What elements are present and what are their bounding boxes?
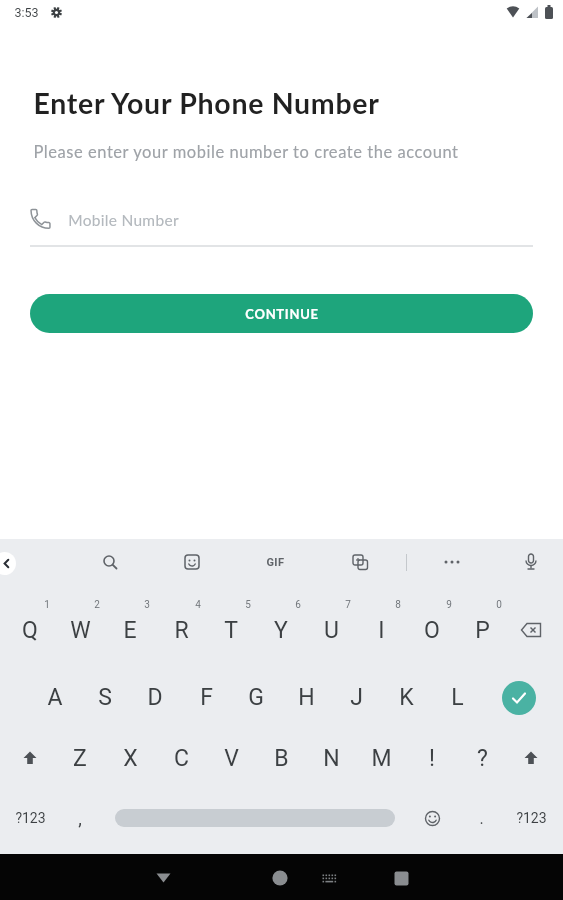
staticText: N xyxy=(323,745,340,772)
button[interactable]: ?123 xyxy=(507,796,555,840)
button[interactable] xyxy=(88,539,132,585)
button[interactable]: B xyxy=(257,736,305,780)
button[interactable] xyxy=(258,856,302,900)
button[interactable]: CONTINUE xyxy=(30,294,533,333)
button[interactable] xyxy=(170,539,214,585)
button[interactable] xyxy=(141,856,185,900)
staticText: 3:53 xyxy=(14,5,39,20)
button[interactable]: ! xyxy=(408,736,456,780)
staticText: CONTINUE xyxy=(245,306,319,322)
button[interactable]: D xyxy=(131,675,179,719)
staticText: F xyxy=(200,684,213,711)
button[interactable] xyxy=(507,608,555,652)
staticText: O xyxy=(424,617,440,644)
button[interactable]: P xyxy=(458,608,506,652)
staticText: D xyxy=(147,684,163,711)
button[interactable] xyxy=(502,681,536,715)
staticText: B xyxy=(274,745,289,772)
staticText: T xyxy=(224,617,238,644)
button[interactable]: T xyxy=(207,608,255,652)
staticText: K xyxy=(399,684,414,711)
staticText: Q xyxy=(22,617,38,644)
button[interactable]: E xyxy=(106,608,154,652)
staticText: C xyxy=(174,745,189,772)
button[interactable] xyxy=(338,539,382,585)
button[interactable]: . xyxy=(457,796,505,840)
button[interactable] xyxy=(509,539,553,585)
staticText: ?123 xyxy=(15,810,46,826)
staticText: M xyxy=(371,745,392,772)
staticText: P xyxy=(475,617,490,644)
staticText: J xyxy=(350,684,363,711)
staticText: I xyxy=(378,617,385,644)
staticText: A xyxy=(47,684,63,711)
button[interactable]: S xyxy=(81,675,129,719)
staticText: 1 xyxy=(44,599,50,611)
staticText: V xyxy=(224,745,239,772)
staticText: ?123 xyxy=(516,810,547,826)
button[interactable] xyxy=(412,798,452,838)
staticText: ! xyxy=(429,745,435,772)
staticText: , xyxy=(78,808,82,829)
button[interactable]: A xyxy=(31,675,79,719)
button[interactable] xyxy=(430,539,474,585)
button[interactable]: R xyxy=(157,608,205,652)
staticText: G xyxy=(248,684,264,711)
button[interactable]: ? xyxy=(458,736,506,780)
staticText: W xyxy=(70,617,91,644)
staticText: . xyxy=(479,809,484,828)
staticText: R xyxy=(174,617,189,644)
staticText: H xyxy=(298,684,315,711)
button[interactable]: W xyxy=(56,608,104,652)
staticText: 4 xyxy=(195,599,201,611)
staticText: 6 xyxy=(295,599,301,611)
staticText: 5 xyxy=(245,599,251,611)
button[interactable]: Z xyxy=(56,736,104,780)
button[interactable]: M xyxy=(357,736,405,780)
staticText: L xyxy=(451,684,464,711)
button[interactable]: V xyxy=(207,736,255,780)
button[interactable]: I xyxy=(357,608,405,652)
staticText: Please enter your mobile number to creat… xyxy=(33,142,459,162)
staticText: ? xyxy=(477,745,488,772)
staticText: S xyxy=(98,684,112,711)
button[interactable] xyxy=(507,736,555,780)
staticText: 0 xyxy=(496,599,502,611)
button[interactable]: GIF xyxy=(253,539,297,585)
button[interactable] xyxy=(0,552,16,575)
button[interactable]: K xyxy=(382,675,430,719)
staticText: 3 xyxy=(144,599,150,611)
button[interactable]: , xyxy=(56,796,104,840)
staticText: Y xyxy=(274,617,288,644)
button[interactable]: Q xyxy=(6,608,54,652)
button[interactable] xyxy=(379,856,423,900)
staticText: Mobile Number xyxy=(68,211,179,230)
staticText: Z xyxy=(73,745,87,772)
button[interactable]: C xyxy=(157,736,205,780)
staticText: 8 xyxy=(395,599,401,611)
button[interactable] xyxy=(313,864,345,894)
button[interactable]: Y xyxy=(257,608,305,652)
button[interactable]: X xyxy=(106,736,154,780)
button[interactable]: N xyxy=(307,736,355,780)
button[interactable] xyxy=(115,809,395,827)
button[interactable]: Mobile Number xyxy=(30,208,533,232)
staticText: E xyxy=(123,617,137,644)
button[interactable]: J xyxy=(332,675,380,719)
button[interactable]: L xyxy=(433,675,481,719)
staticText: 7 xyxy=(345,599,351,611)
button[interactable]: H xyxy=(282,675,330,719)
staticText: GIF xyxy=(266,556,285,569)
button[interactable]: ?123 xyxy=(6,796,54,840)
button[interactable]: O xyxy=(408,608,456,652)
staticText: 9 xyxy=(446,599,452,611)
staticText: 2 xyxy=(94,599,100,611)
staticText: U xyxy=(324,617,339,644)
staticText: X xyxy=(123,745,138,772)
button[interactable] xyxy=(6,736,54,780)
button[interactable]: G xyxy=(232,675,280,719)
button[interactable]: U xyxy=(307,608,355,652)
button[interactable]: F xyxy=(182,675,230,719)
staticText: Enter Your Phone Number xyxy=(33,86,380,120)
